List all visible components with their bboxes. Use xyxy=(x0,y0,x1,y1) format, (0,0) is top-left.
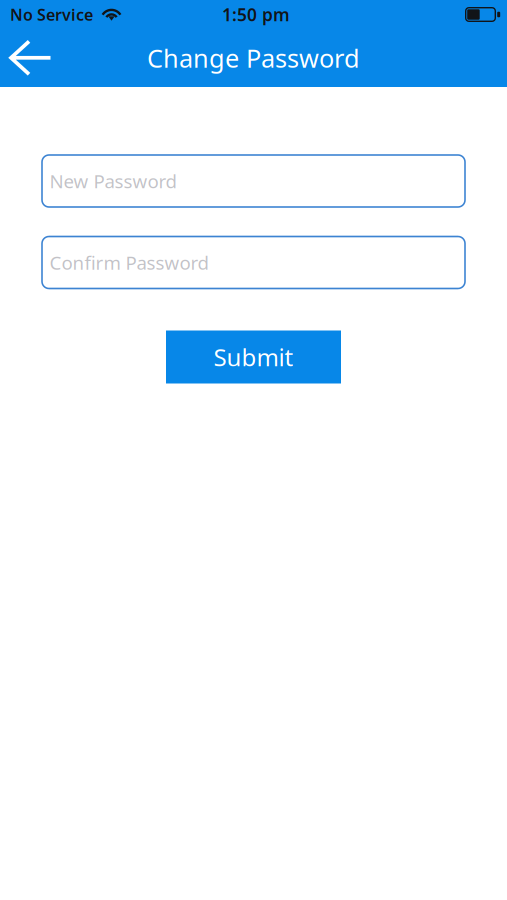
staticText: New Password xyxy=(49,169,176,193)
button[interactable]: Submit xyxy=(166,330,341,383)
staticText: Submit xyxy=(213,341,293,373)
button[interactable]: Confirm Password xyxy=(42,236,465,288)
staticText: Change Password xyxy=(147,41,360,75)
button[interactable]: New Password xyxy=(42,155,465,207)
staticText: Confirm Password xyxy=(49,250,208,275)
staticText: No Service xyxy=(10,4,93,25)
button[interactable]: Back xyxy=(0,29,60,87)
staticText: 1:50 pm xyxy=(222,3,290,26)
